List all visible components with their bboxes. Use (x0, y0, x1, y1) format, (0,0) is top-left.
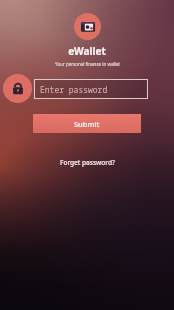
button[interactable]: Forget password? (54, 155, 121, 170)
staticText: Enter password (40, 84, 108, 95)
staticText: Your personal finance in wallet (55, 61, 120, 67)
button[interactable]: Enter password (34, 79, 148, 99)
button[interactable]: Submit (33, 114, 141, 133)
staticText: Submit (74, 119, 100, 129)
staticText: eWallet (68, 44, 106, 58)
button[interactable]: Password lock (3, 74, 32, 103)
staticText: Forget password? (60, 158, 115, 167)
